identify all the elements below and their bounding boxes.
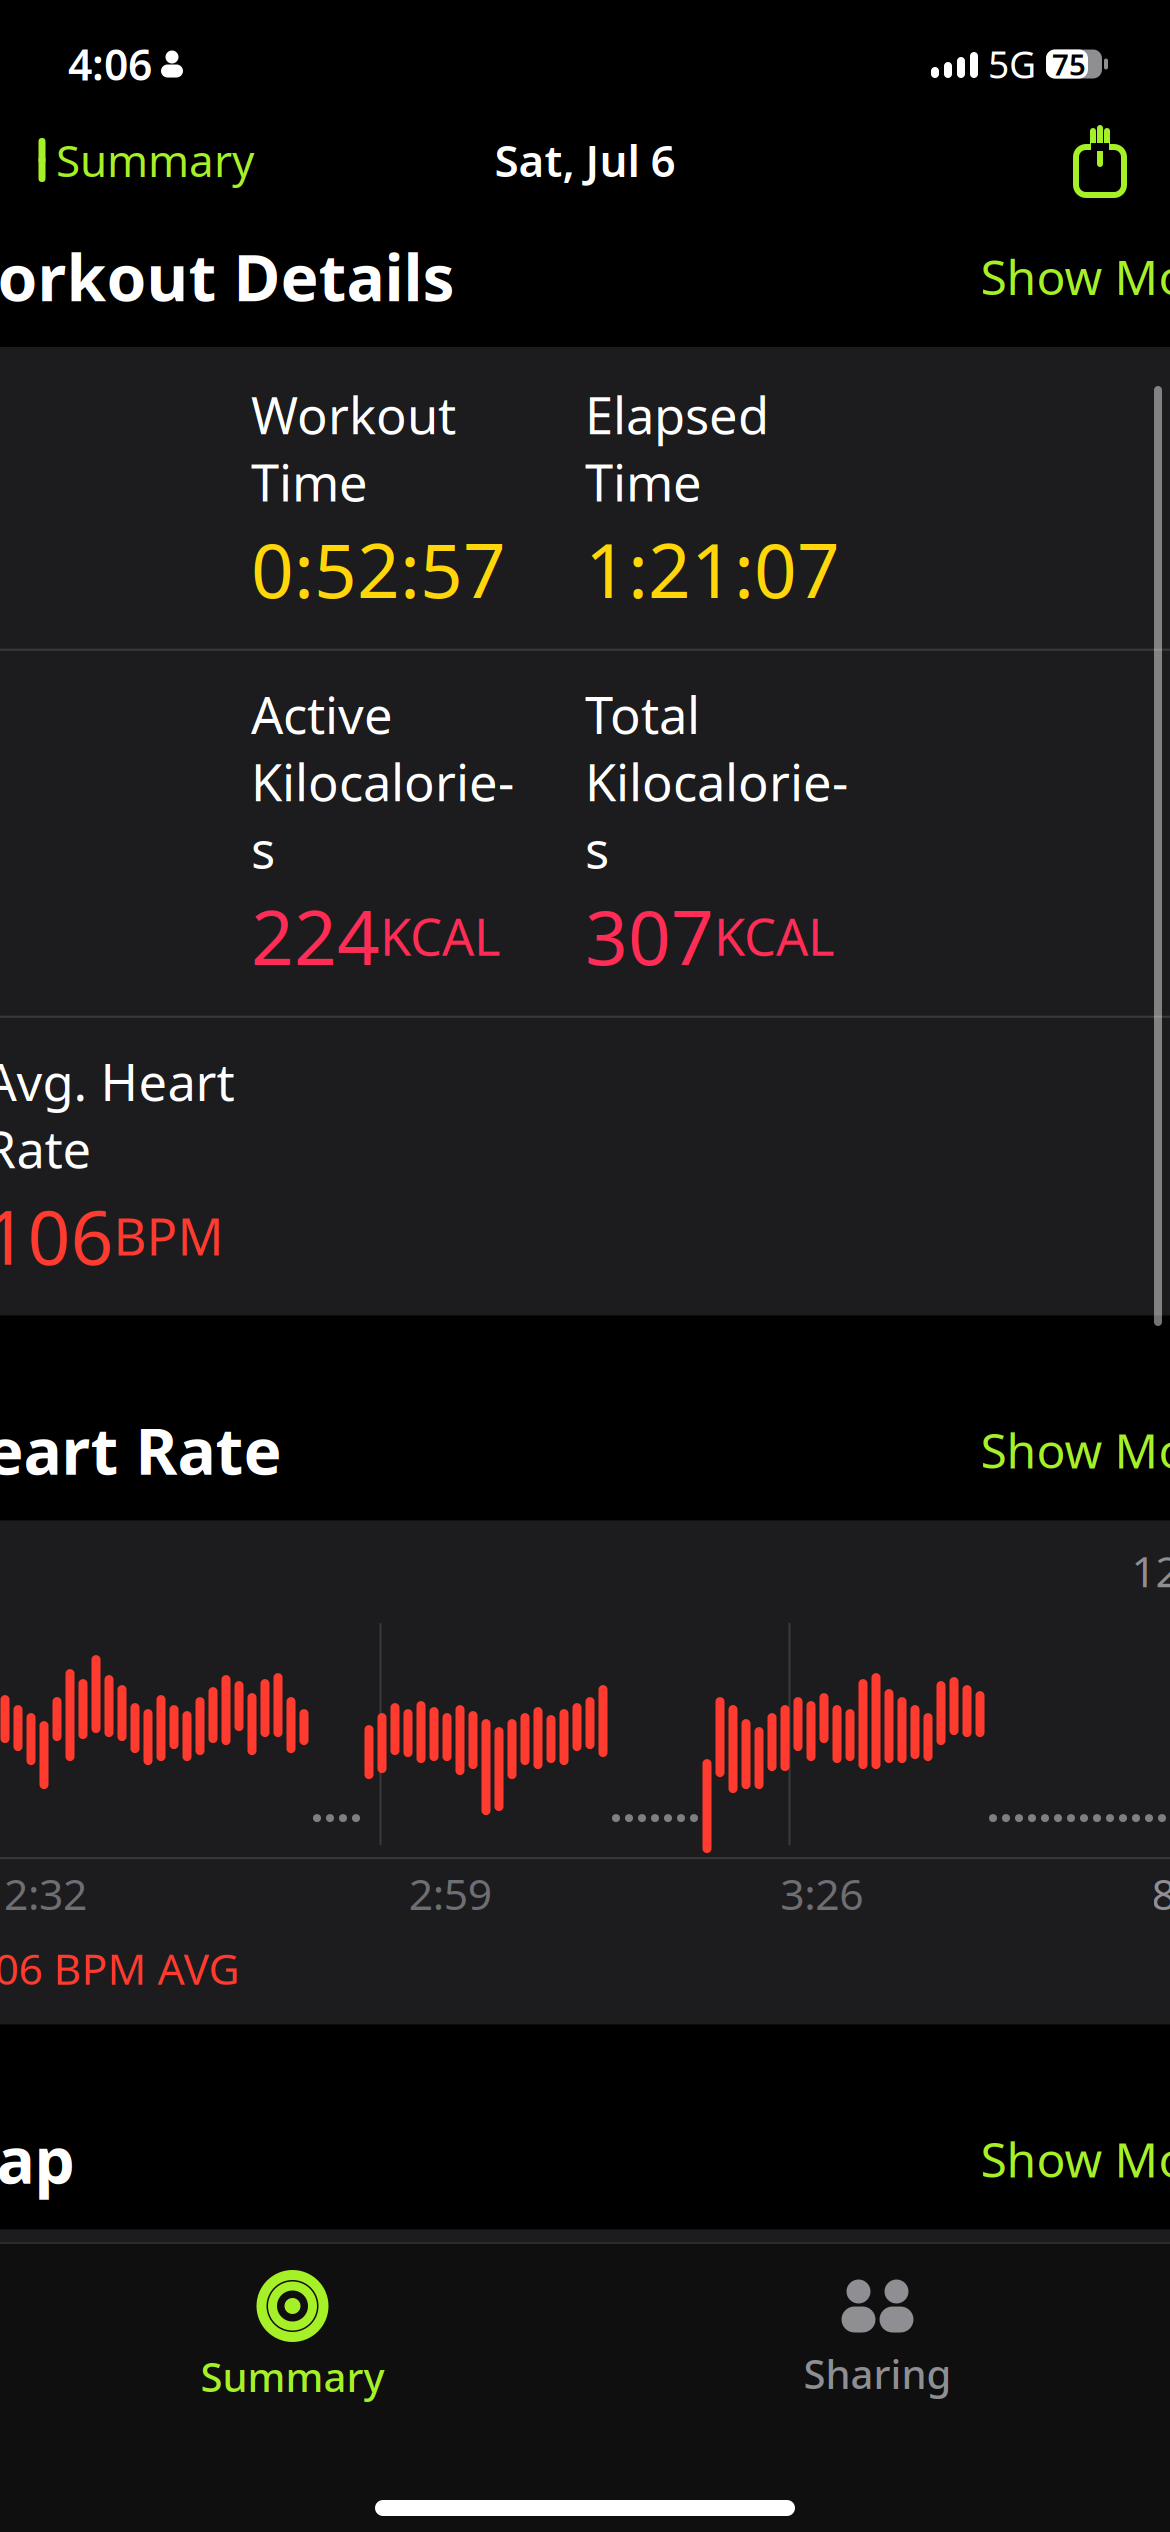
- button[interactable]: Summary: [0, 119, 254, 201]
- staticText: 106 BPM AVG: [0, 1940, 239, 1996]
- staticText: HUMIDITY: [478, 2480, 675, 2532]
- staticText: Total Kilocalories: [585, 681, 848, 883]
- staticText: 1:21:07: [585, 520, 840, 619]
- staticText: 2:59: [409, 1865, 492, 1922]
- button[interactable]: Show More: [980, 237, 1170, 316]
- button[interactable]: Sharing: [585, 2261, 1170, 2414]
- staticText: Active Kilocalories: [251, 681, 514, 883]
- staticText: Map: [0, 2116, 74, 2201]
- staticText: Elapsed Time: [585, 381, 769, 516]
- staticText: Sat, Jul 6: [494, 131, 675, 189]
- staticText: 86: [1151, 1865, 1170, 1922]
- staticText: 4:06: [68, 36, 152, 92]
- button[interactable]: Summary: [0, 2258, 585, 2417]
- staticText: KCAL: [380, 902, 501, 970]
- staticText: 3:26: [780, 1865, 863, 1922]
- staticText: Workout Time: [251, 381, 456, 516]
- staticText: 224: [251, 887, 380, 986]
- staticText: BPM: [113, 1202, 223, 1269]
- staticText: 307: [585, 887, 714, 986]
- staticText: KCAL: [714, 902, 835, 970]
- staticText: 롯: [350, 2461, 382, 2501]
- staticText: Heart Rate: [0, 1407, 281, 1492]
- staticText: Workout Details: [0, 234, 454, 319]
- staticText: 75: [1052, 44, 1086, 83]
- staticText: 5G: [988, 39, 1036, 89]
- button[interactable]: Show More: [980, 1410, 1170, 1490]
- staticText: Summary: [200, 2350, 384, 2403]
- staticText: 빅가이즈크랩: [62, 2347, 254, 2386]
- staticText: Sharing: [803, 2347, 951, 2400]
- staticText: 106: [0, 1186, 113, 1285]
- staticText: 129: [1131, 1542, 1170, 1599]
- staticText: 2:32: [4, 1865, 87, 1922]
- staticText: Avg. Heart Rate: [0, 1048, 234, 1182]
- staticText: Show More: [980, 2127, 1170, 2191]
- staticText: 0:52:57: [251, 520, 506, 619]
- button[interactable]: Workout route map: [0, 2265, 388, 2532]
- button[interactable]: Show More: [980, 2119, 1170, 2199]
- staticText: Show More: [980, 1418, 1170, 1482]
- staticText: Summary: [56, 131, 254, 189]
- staticText: Show More: [980, 245, 1170, 308]
- button[interactable]: Share: [1070, 115, 1170, 205]
